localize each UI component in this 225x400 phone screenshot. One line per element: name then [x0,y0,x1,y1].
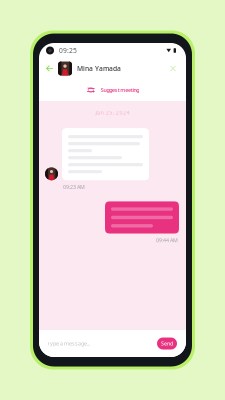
button[interactable]: Back [43,60,56,76]
staticText: Jan 25, 2024 [95,109,129,116]
button[interactable]: Send [157,337,177,349]
staticText: 09:25 [59,46,77,55]
staticText: Mina Yamada [77,64,121,73]
staticText: Suggest meeting [101,86,139,94]
button[interactable]: Suggest meeting [39,79,186,101]
staticText: Type a message... [47,340,90,347]
staticText: 09:23 AM [63,183,85,190]
staticText: 09:44 AM [156,237,178,244]
staticText: Send [161,340,173,347]
button[interactable]: Close [167,61,179,75]
